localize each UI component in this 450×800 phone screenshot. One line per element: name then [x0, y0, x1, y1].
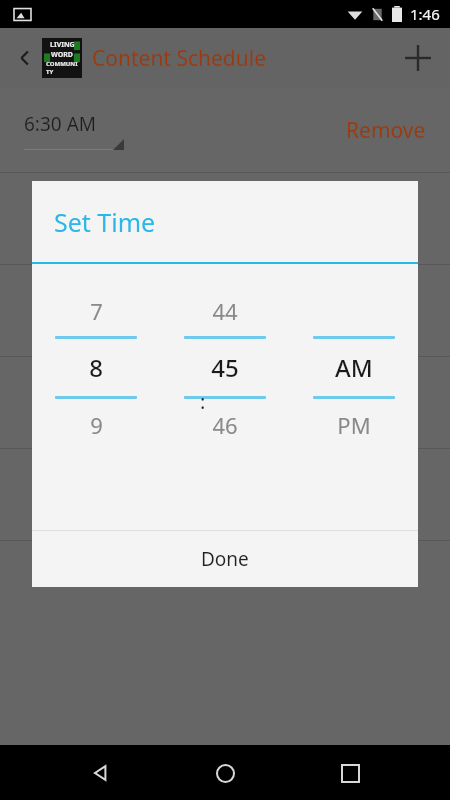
staticText: PM — [337, 410, 371, 440]
staticText: COMMUNITY — [46, 60, 78, 76]
button[interactable]: 7 — [32, 286, 160, 336]
staticText: : — [200, 388, 206, 415]
staticText: 44 — [212, 296, 238, 326]
staticText: 7 — [90, 296, 103, 326]
button[interactable]: AM — [289, 339, 418, 396]
staticText: 1:46 — [410, 4, 440, 24]
staticText: 45 — [211, 351, 239, 384]
button[interactable]: Done — [32, 531, 418, 587]
button[interactable]: 9 — [32, 399, 160, 451]
button[interactable]: Back — [77, 749, 125, 797]
staticText: Set Time — [54, 205, 156, 239]
staticText: LIVING — [50, 40, 75, 50]
staticText: 6:30 AM — [24, 111, 97, 137]
button[interactable]: 45 — [160, 339, 289, 396]
button[interactable]: Remove — [346, 116, 426, 145]
button[interactable]: 6:30 AM — [24, 111, 124, 150]
button[interactable]: Back — [8, 41, 42, 75]
button[interactable]: 8 — [32, 339, 160, 396]
button[interactable]: Recent apps — [326, 749, 374, 797]
staticText: Remove — [346, 116, 426, 145]
staticText: AM — [335, 351, 373, 384]
button[interactable]: Living Word Community logo — [42, 38, 82, 78]
button[interactable]: Home — [201, 749, 249, 797]
button[interactable]: Add — [394, 34, 442, 82]
staticText: WORD — [51, 50, 73, 60]
button[interactable]: PM — [289, 399, 418, 451]
staticText: Content Schedule — [92, 44, 266, 73]
staticText: 46 — [212, 410, 238, 440]
button[interactable]: 44 — [160, 286, 289, 336]
staticText: 9 — [90, 410, 103, 440]
staticText: 8 — [89, 351, 103, 384]
button[interactable]: 46 — [160, 399, 289, 451]
staticText: Done — [201, 546, 249, 572]
